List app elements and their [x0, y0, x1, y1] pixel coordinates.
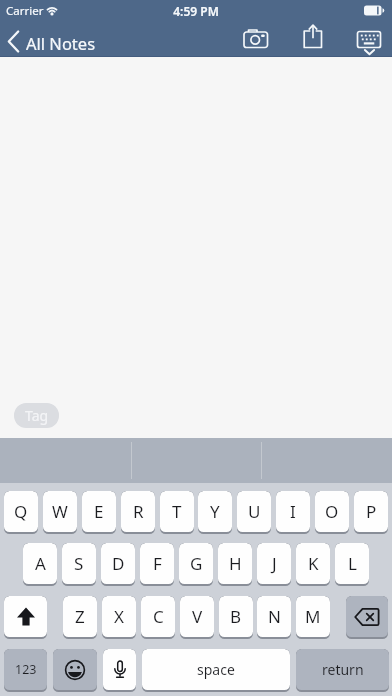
staticText: M: [305, 605, 321, 628]
staticText: O: [325, 500, 339, 523]
staticText: U: [248, 500, 261, 523]
button[interactable]: [4, 596, 47, 639]
button[interactable]: Y: [198, 491, 232, 534]
button[interactable]: I: [276, 491, 310, 534]
button[interactable]: N: [257, 596, 291, 639]
button[interactable]: [103, 649, 136, 692]
staticText: W: [52, 500, 68, 523]
button[interactable]: J: [257, 543, 291, 586]
button[interactable]: [53, 649, 97, 692]
staticText: E: [94, 500, 104, 523]
button[interactable]: A: [23, 543, 57, 586]
staticText: J: [272, 552, 277, 575]
staticText: R: [133, 500, 144, 523]
button[interactable]: G: [179, 543, 213, 586]
staticText: Y: [210, 500, 220, 523]
staticText: Carrier: [6, 3, 44, 19]
button[interactable]: K: [296, 543, 330, 586]
staticText: space: [197, 660, 235, 679]
staticText: V: [192, 605, 203, 628]
button[interactable]: P: [354, 491, 388, 534]
staticText: P: [366, 500, 377, 523]
button[interactable]: [298, 22, 326, 52]
staticText: S: [74, 552, 84, 575]
button[interactable]: L: [335, 543, 369, 586]
staticText: A: [35, 552, 46, 575]
staticText: Z: [75, 605, 85, 628]
staticText: X: [114, 605, 124, 628]
button[interactable]: H: [218, 543, 252, 586]
staticText: return: [322, 660, 364, 679]
button[interactable]: W: [43, 491, 77, 534]
staticText: Tag: [25, 406, 49, 425]
button[interactable]: D: [101, 543, 135, 586]
button[interactable]: space: [142, 649, 290, 692]
staticText: K: [308, 552, 319, 575]
button[interactable]: [346, 596, 388, 639]
button[interactable]: E: [82, 491, 116, 534]
staticText: D: [112, 552, 125, 575]
staticText: N: [268, 605, 281, 628]
button[interactable]: [238, 26, 274, 52]
button[interactable]: Q: [4, 491, 38, 534]
staticText: L: [348, 552, 357, 575]
staticText: All Notes: [26, 32, 96, 54]
button[interactable]: O: [315, 491, 349, 534]
button[interactable]: Z: [63, 596, 97, 639]
button[interactable]: C: [141, 596, 175, 639]
button[interactable]: U: [237, 491, 271, 534]
button[interactable]: All Notes: [0, 24, 105, 57]
button[interactable]: V: [180, 596, 214, 639]
staticText: C: [153, 605, 164, 628]
staticText: T: [172, 500, 182, 523]
staticText: 4:59 PM: [0, 3, 392, 19]
button[interactable]: X: [102, 596, 136, 639]
button[interactable]: [354, 24, 390, 57]
staticText: B: [230, 605, 242, 628]
button[interactable]: T: [160, 491, 194, 534]
button[interactable]: return: [296, 649, 389, 692]
staticText: H: [229, 552, 242, 575]
staticText: F: [153, 552, 162, 575]
staticText: Q: [14, 500, 28, 523]
staticText: I: [290, 500, 296, 523]
button[interactable]: R: [121, 491, 155, 534]
button[interactable]: S: [62, 543, 96, 586]
button[interactable]: 123: [4, 649, 47, 692]
button[interactable]: B: [219, 596, 253, 639]
staticText: G: [190, 552, 203, 575]
staticText: 123: [15, 661, 37, 678]
button[interactable]: M: [296, 596, 330, 639]
button[interactable]: Tag: [14, 403, 59, 428]
button[interactable]: F: [140, 543, 174, 586]
